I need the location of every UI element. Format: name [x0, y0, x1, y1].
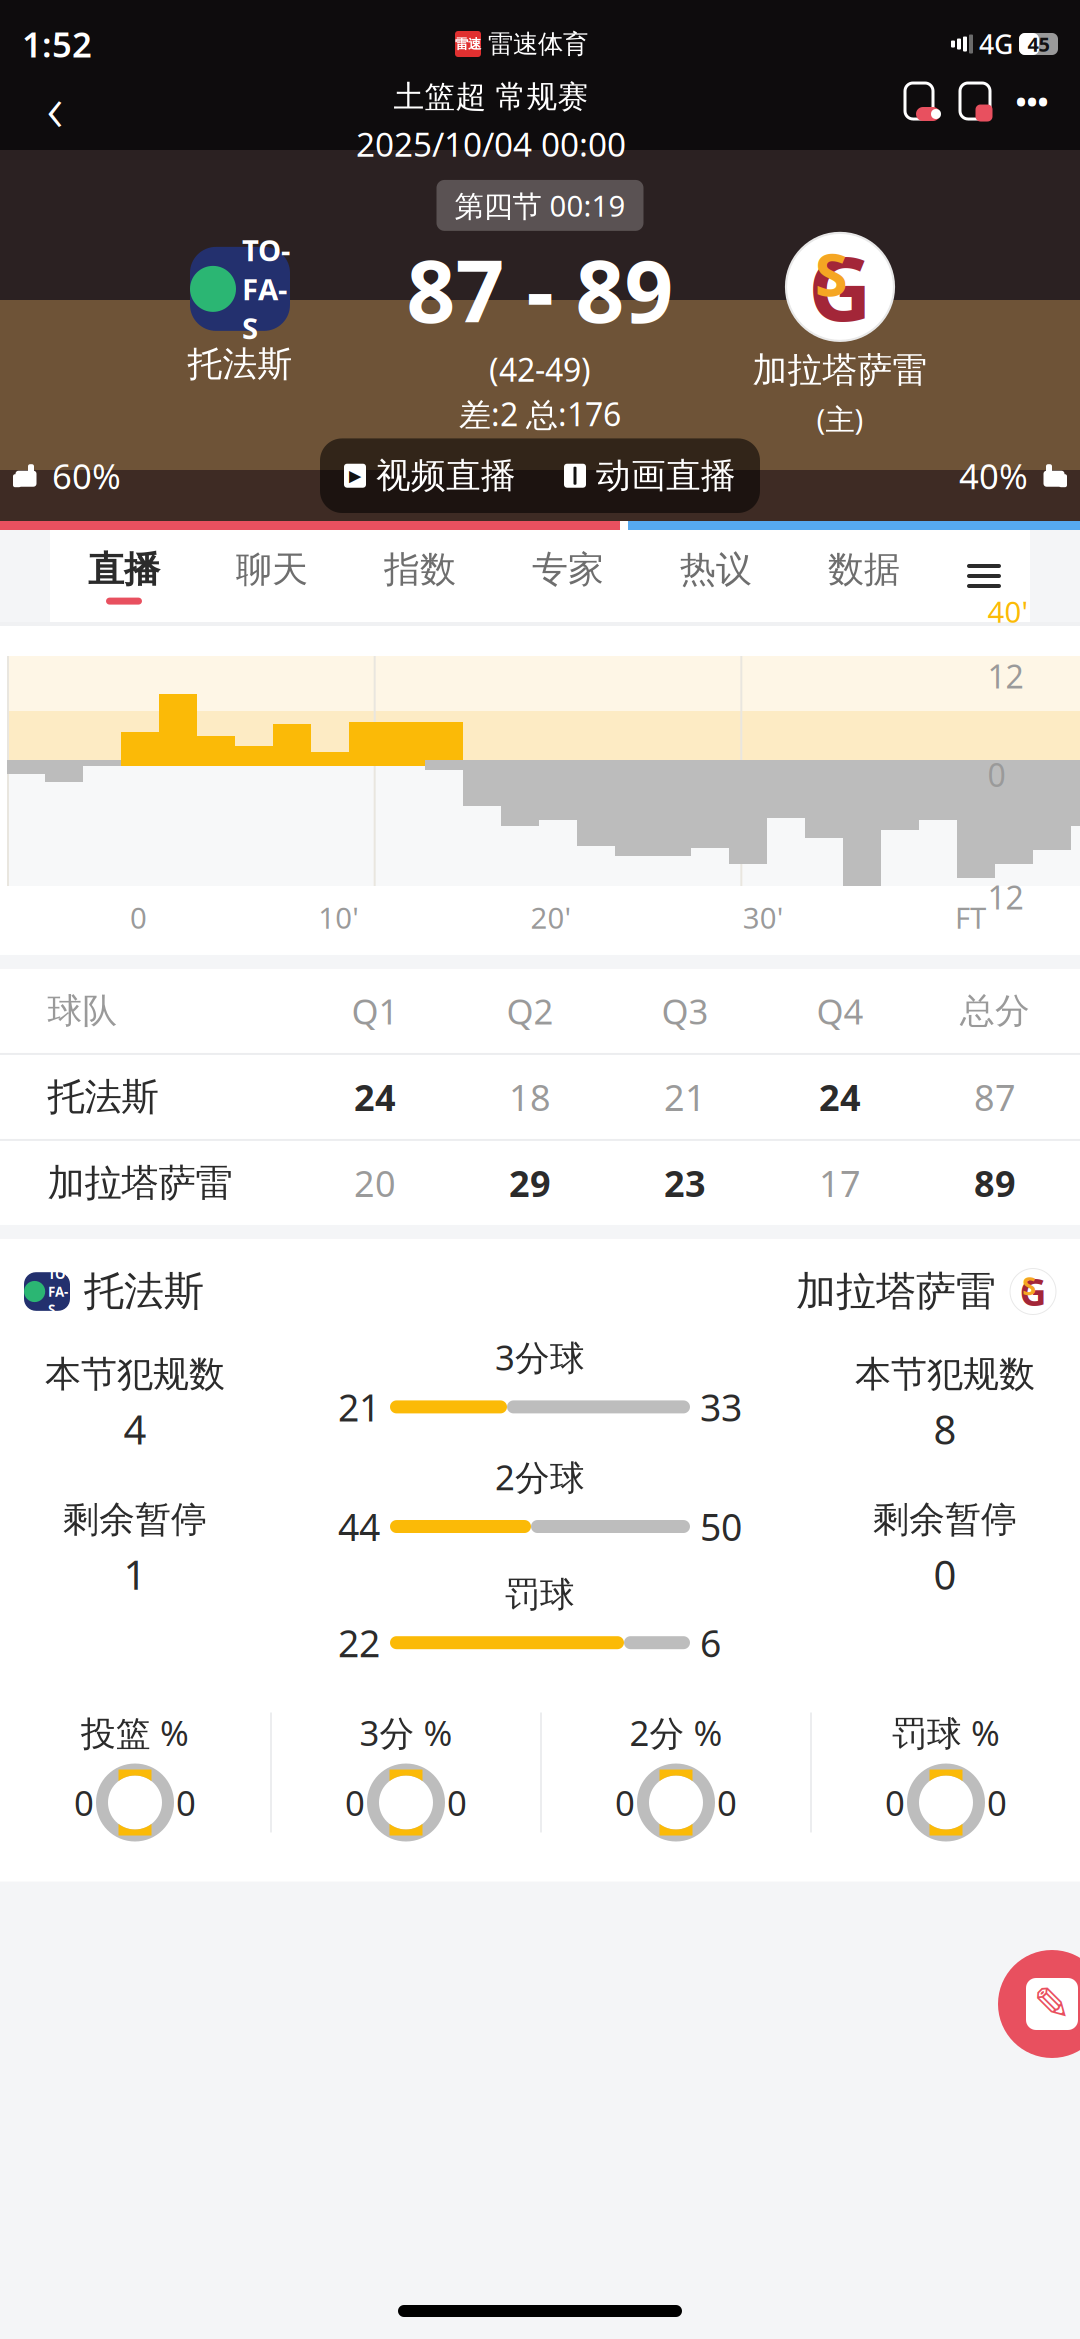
button[interactable]: 更多栏目	[938, 530, 1030, 622]
staticText: 23	[664, 1159, 706, 1207]
staticText: 数据	[828, 547, 900, 592]
button[interactable]: ▶	[320, 438, 540, 513]
staticText: S	[815, 233, 848, 313]
staticText: •••	[1015, 81, 1048, 120]
staticText: 0	[933, 1548, 956, 1601]
staticText: 3分球	[495, 1334, 585, 1380]
staticText: S	[1022, 1269, 1036, 1302]
staticText: 剩余暂停	[63, 1497, 207, 1542]
staticText: 0	[717, 1779, 737, 1825]
staticText: 12	[987, 876, 1023, 918]
staticText: 专家	[532, 547, 604, 592]
button[interactable]: 通知设置	[898, 78, 940, 124]
staticText: 托法斯	[47, 1074, 158, 1120]
staticText: 罚球	[505, 1573, 575, 1616]
button[interactable]: 画中画	[954, 78, 996, 124]
staticText: G	[1019, 1267, 1046, 1316]
button[interactable]: 动画直播	[540, 438, 760, 513]
button[interactable]: 专家	[494, 530, 642, 622]
staticText: 0	[74, 1779, 94, 1825]
staticText: 8	[933, 1402, 956, 1455]
staticText: 0	[885, 1779, 905, 1825]
staticText: 4G	[979, 26, 1013, 62]
staticText: 22	[338, 1618, 380, 1667]
button[interactable]: 发布动态	[998, 1950, 1080, 2058]
staticText: 30'	[743, 898, 784, 937]
staticText: 87 - 89	[406, 233, 673, 346]
staticText: 0	[130, 898, 147, 937]
staticText: 33	[700, 1382, 742, 1432]
staticText: 球队	[47, 990, 117, 1032]
staticText: 加拉塔萨雷	[796, 1267, 996, 1316]
button[interactable]: 返回	[26, 78, 84, 136]
staticText: 雷速体育	[488, 28, 588, 59]
button[interactable]: 60%	[0, 453, 121, 499]
staticText: 0	[447, 1779, 467, 1825]
staticText: 本节犯规数	[45, 1352, 225, 1396]
staticText: 3分 %	[359, 1709, 452, 1755]
staticText: 动画直播	[596, 454, 736, 497]
staticText: 直播	[88, 547, 160, 592]
button[interactable]: 聊天	[198, 530, 346, 622]
staticText: 29	[509, 1159, 551, 1207]
staticText: 24	[354, 1073, 396, 1121]
staticText: ▶	[349, 467, 361, 485]
staticText: 托法斯	[84, 1267, 204, 1316]
staticText: 加拉塔萨雷	[752, 349, 927, 391]
staticText: 89	[974, 1159, 1016, 1207]
staticText: 10'	[318, 898, 359, 937]
staticText: 视频直播	[376, 454, 516, 497]
staticText: TOFAS	[48, 1265, 70, 1318]
staticText: 聊天	[236, 547, 308, 592]
staticText: 50	[700, 1502, 742, 1551]
staticText: 6	[700, 1618, 721, 1667]
staticText: (42-49)	[489, 348, 591, 391]
staticText: 87	[974, 1073, 1016, 1121]
staticText: TOFAS	[70, 694, 91, 726]
staticText: 差:2 总:176	[459, 393, 621, 435]
staticText: Q4	[816, 988, 863, 1034]
staticText: 4	[123, 1402, 146, 1455]
staticText: 40'	[987, 592, 1028, 631]
staticText: 1:52	[22, 21, 92, 67]
button[interactable]: 数据	[790, 530, 938, 622]
button[interactable]: 热议	[642, 530, 790, 622]
staticText: 0	[176, 1779, 196, 1825]
staticText: 0	[615, 1779, 635, 1825]
staticText: 投篮 %	[81, 1709, 189, 1755]
staticText: 土篮超 常规赛	[393, 78, 588, 116]
staticText: 21	[338, 1382, 380, 1432]
staticText: 2分 %	[629, 1709, 722, 1755]
staticText: 21	[664, 1073, 706, 1121]
staticText: 0	[345, 1779, 365, 1825]
staticText: 第四节 00:19	[454, 186, 625, 225]
staticText: 44	[338, 1502, 380, 1551]
staticText: Q1	[351, 988, 398, 1034]
staticText: (主)	[816, 399, 863, 438]
staticText: TOFAS	[242, 230, 290, 347]
button[interactable]: 40%	[959, 453, 1080, 499]
button[interactable]: 直播	[50, 530, 198, 622]
staticText: 2分球	[495, 1454, 585, 1500]
staticText: 剩余暂停	[873, 1497, 1017, 1542]
staticText: 20'	[530, 898, 571, 937]
staticText: 加拉塔萨雷	[47, 1160, 232, 1206]
staticText: 0	[987, 753, 1005, 796]
staticText: 20	[354, 1159, 396, 1207]
staticText: 总分	[960, 990, 1030, 1032]
staticText: 17	[819, 1159, 861, 1207]
staticText: FT	[955, 898, 986, 937]
staticText: 45	[1027, 31, 1049, 57]
staticText: 40%	[959, 453, 1028, 499]
button[interactable]: 指数	[346, 530, 494, 622]
staticText: 托法斯	[187, 343, 292, 385]
staticText: Q2	[506, 988, 553, 1034]
staticText: 60%	[52, 453, 121, 499]
staticText: 雷速	[455, 36, 481, 52]
staticText: 2025/10/04 00:00	[356, 122, 626, 166]
staticText: G	[808, 228, 872, 345]
staticText: 24	[819, 1073, 861, 1121]
button[interactable]: 更多	[1010, 78, 1054, 124]
